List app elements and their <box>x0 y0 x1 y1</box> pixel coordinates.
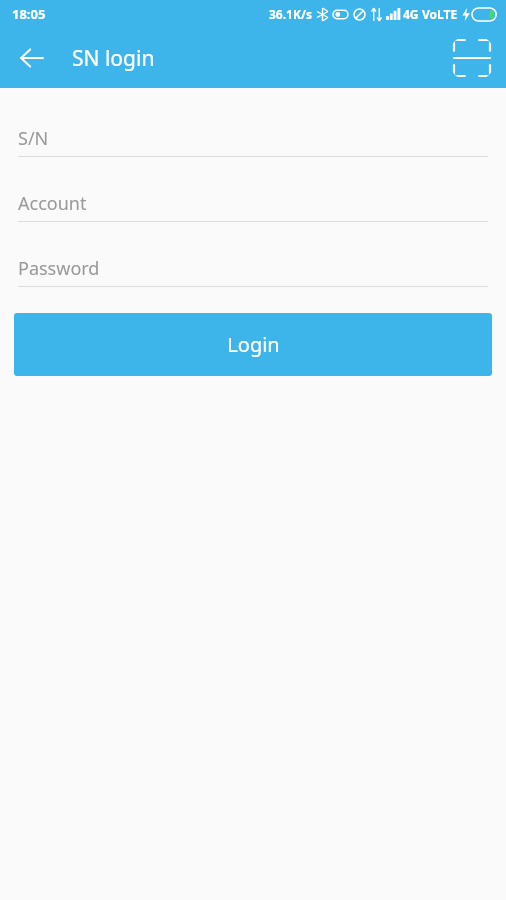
staticText: Account <box>18 191 87 216</box>
button[interactable]: Scan code <box>448 34 496 82</box>
staticText: VoLTE <box>422 6 458 22</box>
staticText: Login <box>227 331 280 358</box>
button[interactable]: Account <box>18 187 488 222</box>
staticText: 18:05 <box>12 5 46 23</box>
button[interactable]: Login <box>14 313 492 376</box>
staticText: 4G <box>403 6 419 22</box>
button[interactable]: Password <box>18 252 488 287</box>
staticText: 36.1K/s <box>269 6 312 22</box>
staticText: S/N <box>18 126 49 151</box>
staticText: Password <box>18 256 100 281</box>
button[interactable]: Back <box>8 34 56 82</box>
staticText: SN login <box>72 44 155 73</box>
button[interactable]: S/N <box>18 122 488 157</box>
